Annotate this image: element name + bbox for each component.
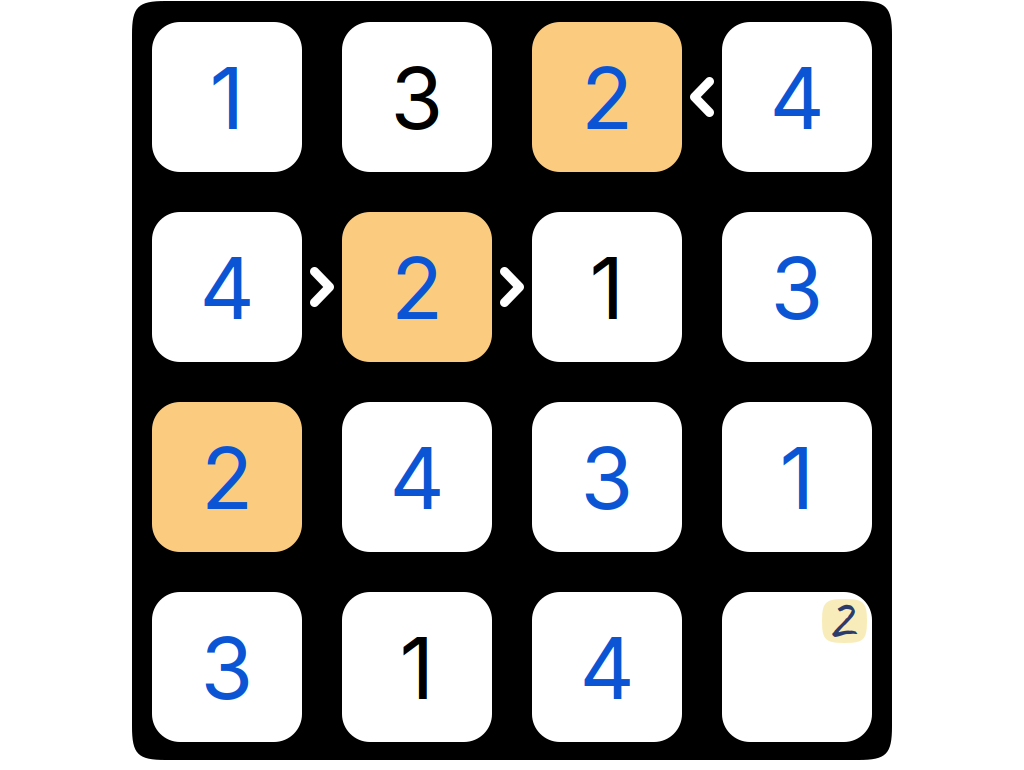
staticText: 1 [399,616,434,720]
staticText: 4 [199,236,254,340]
staticText: 1 [209,46,244,150]
staticText: 4 [579,616,634,720]
button[interactable]: Row 2, column 1, 4 [152,212,302,362]
button[interactable]: Row 4, column 1, 3 [152,592,302,742]
button[interactable]: Row 3, column 4, 1 [722,402,872,552]
button[interactable]: Row 4, column 2, 1, given [342,592,492,742]
staticText: 4 [769,46,824,150]
staticText: 1 [589,236,624,340]
staticText: 1 [779,426,814,530]
staticText: 2 [391,236,443,340]
staticText: 2 [581,46,633,150]
button[interactable]: Row 4, column 4, empty, note 2 [722,592,872,742]
staticText: 2 [201,426,253,530]
button[interactable]: Row 2, column 2, 2 [342,212,492,362]
staticText: 2 [824,577,853,657]
staticText: 3 [390,46,443,150]
button[interactable]: Row 3, column 1, 2 [152,402,302,552]
button[interactable]: Row 4, column 3, 4 [532,592,682,742]
staticText: 4 [389,426,444,530]
staticText: 3 [770,236,823,340]
button[interactable]: Row 3, column 2, 4 [342,402,492,552]
button[interactable]: Row 3, column 3, 3 [532,402,682,552]
button[interactable]: Row 2, column 4, 3 [722,212,872,362]
button[interactable]: Row 1, column 2, 3, given [342,22,492,172]
button[interactable]: Row 1, column 3, 2 [532,22,682,172]
button[interactable]: Row 2, column 3, 1, given [532,212,682,362]
button[interactable]: Row 1, column 1, 1 [152,22,302,172]
staticText: 3 [200,616,253,720]
staticText: 3 [580,426,633,530]
button[interactable]: Row 1, column 4, 4 [722,22,872,172]
